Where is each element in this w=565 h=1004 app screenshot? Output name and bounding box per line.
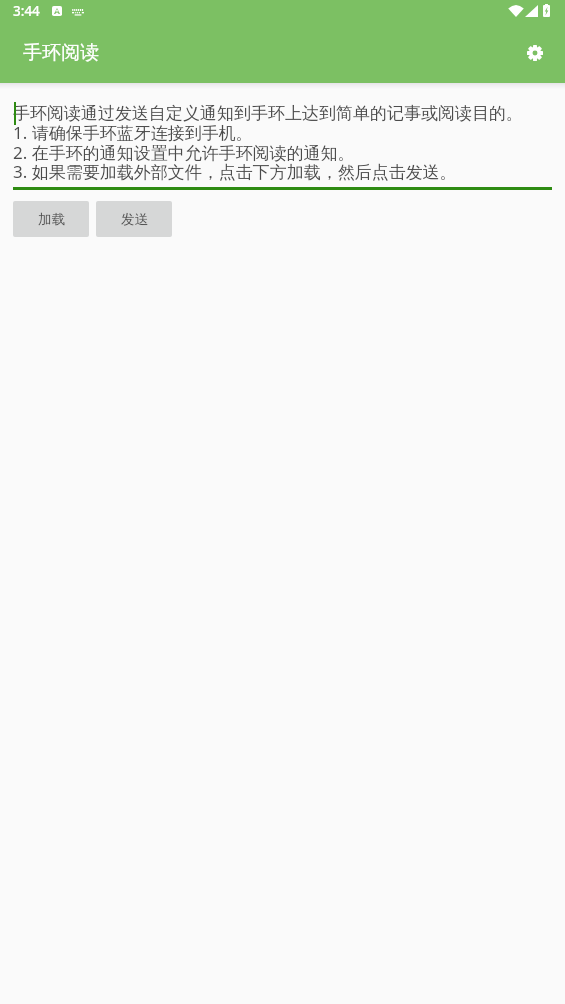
staticText: 3:44: [13, 2, 40, 20]
button[interactable]: 发送: [96, 201, 172, 237]
staticText: 3. 如果需要加载外部文件，点击下方加载，然后点击发送。: [13, 160, 457, 182]
button[interactable]: 手环阅读通过发送自定义通知到手环上达到简单的记事或阅读目的。: [0, 102, 565, 190]
button[interactable]: Settings: [511, 29, 559, 77]
staticText: 手环阅读通过发送自定义通知到手环上达到简单的记事或阅读目的。: [13, 103, 523, 124]
staticText: 加载: [38, 211, 65, 228]
staticText: 2. 在手环的通知设置中允许手环阅读的通知。: [13, 141, 355, 163]
staticText: 1. 请确保手环蓝牙连接到手机。: [13, 121, 253, 143]
staticText: 发送: [121, 211, 148, 228]
button[interactable]: 加载: [13, 201, 89, 237]
staticText: 手环阅读: [23, 41, 99, 65]
